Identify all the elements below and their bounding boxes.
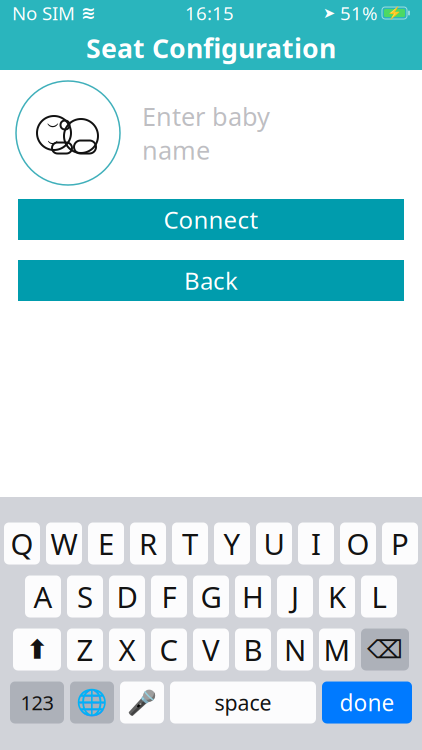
staticText: S — [77, 577, 93, 616]
staticText: I — [311, 524, 321, 563]
button[interactable]: U — [256, 522, 292, 564]
button[interactable]: K — [319, 575, 355, 617]
staticText: U — [263, 524, 284, 563]
staticText: ︶ — [47, 120, 59, 134]
staticText: J — [291, 577, 299, 616]
staticText: N — [284, 630, 306, 669]
staticText: T — [182, 524, 198, 563]
staticText: Back — [184, 265, 238, 296]
staticText: Q — [10, 524, 33, 563]
staticText: Enter baby name — [142, 99, 270, 167]
button[interactable]: D — [109, 575, 145, 617]
button[interactable]: Back — [18, 260, 404, 301]
button[interactable]: V — [193, 628, 229, 670]
button[interactable]: T — [172, 522, 208, 564]
staticText: G — [200, 577, 221, 616]
staticText: D — [116, 577, 137, 616]
button[interactable]: done — [322, 681, 412, 723]
button[interactable]: H — [235, 575, 271, 617]
staticText: 🌐 — [76, 688, 108, 717]
staticText: B — [243, 630, 262, 669]
staticText: 16:15 — [185, 1, 234, 25]
staticText: F — [161, 577, 176, 616]
staticText: W — [50, 524, 77, 563]
staticText: K — [328, 577, 346, 616]
staticText: done — [339, 687, 394, 717]
staticText: No SIM — [12, 1, 75, 25]
button[interactable]: E — [88, 522, 124, 564]
staticText: C — [159, 630, 178, 669]
staticText: V — [202, 630, 220, 669]
button[interactable]: L — [361, 575, 397, 617]
staticText: ⚡ — [387, 6, 402, 20]
button[interactable]: Dictate — [120, 681, 164, 723]
staticText: space — [214, 688, 271, 717]
button[interactable]: Next keyboard — [70, 681, 114, 723]
button[interactable]: 123 — [10, 681, 64, 723]
button[interactable]: R — [130, 522, 166, 564]
staticText: ⌫ — [367, 635, 403, 664]
button[interactable]: W — [46, 522, 82, 564]
button[interactable]: Q — [4, 522, 40, 564]
staticText: O — [346, 524, 369, 563]
button[interactable]: I — [298, 522, 334, 564]
staticText: E — [98, 524, 114, 563]
staticText: 123 — [20, 689, 53, 716]
button[interactable]: G — [193, 575, 229, 617]
staticText: 🎤 — [127, 689, 157, 716]
staticText: 51% — [335, 1, 378, 25]
staticText: Connect — [163, 204, 258, 235]
staticText: X — [118, 630, 135, 669]
button[interactable]: M — [319, 628, 355, 670]
button[interactable]: A — [25, 575, 61, 617]
button[interactable]: F — [151, 575, 187, 617]
staticText: A — [33, 577, 52, 616]
button[interactable]: Delete — [361, 628, 409, 670]
button[interactable]: C — [151, 628, 187, 670]
staticText: M — [323, 630, 350, 669]
button[interactable]: X — [109, 628, 145, 670]
button[interactable]: space — [170, 681, 316, 723]
button[interactable]: N — [277, 628, 313, 670]
button[interactable]: S — [67, 575, 103, 617]
button[interactable]: O — [340, 522, 376, 564]
button[interactable]: Connect — [18, 199, 404, 240]
staticText: L — [371, 577, 386, 616]
staticText: Z — [76, 630, 93, 669]
button[interactable]: Z — [67, 628, 103, 670]
staticText: ➤ — [323, 5, 335, 21]
staticText: Y — [223, 524, 240, 563]
staticText: ≋ — [75, 3, 96, 23]
button[interactable]: B — [235, 628, 271, 670]
staticText: Seat Configuration — [86, 30, 336, 66]
staticText: ︶ — [47, 137, 58, 150]
staticText: R — [139, 524, 157, 563]
button[interactable]: Enter baby name — [120, 103, 271, 163]
button[interactable]: P — [382, 522, 418, 564]
button[interactable]: Shift — [13, 628, 61, 670]
button[interactable]: J — [277, 575, 313, 617]
staticText: P — [391, 524, 409, 563]
staticText: H — [242, 577, 264, 616]
staticText: ⬆ — [26, 634, 48, 665]
button[interactable]: Y — [214, 522, 250, 564]
